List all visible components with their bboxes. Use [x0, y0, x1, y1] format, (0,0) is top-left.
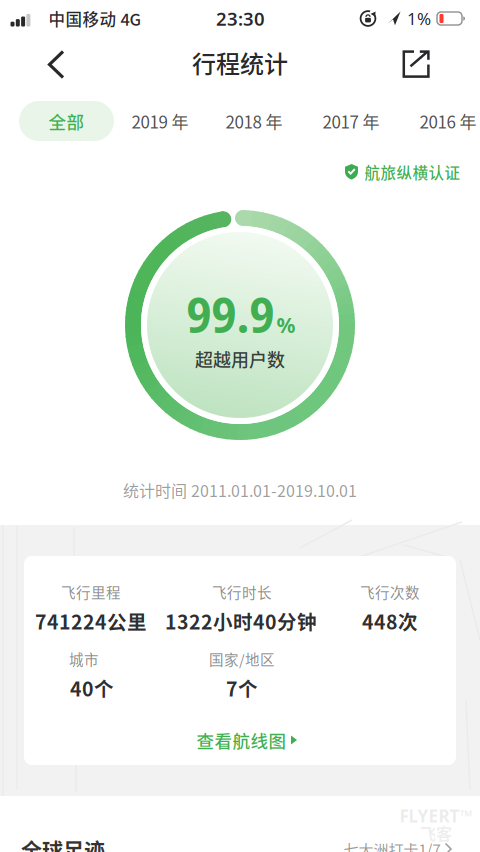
button[interactable]: 2019 年: [131, 101, 188, 141]
staticText: 2016 年: [419, 109, 476, 133]
staticText: 448次: [362, 607, 418, 635]
staticText: 741224公里: [35, 607, 147, 635]
staticText: 1%: [407, 7, 431, 30]
staticText: 航旅纵横认证: [364, 161, 460, 183]
button[interactable]: Share: [394, 41, 438, 85]
button[interactable]: 七大洲打卡1/7: [343, 838, 452, 852]
button[interactable]: Back: [34, 42, 78, 86]
staticText: 全球足迹: [21, 834, 105, 852]
button[interactable]: 全部: [19, 101, 114, 141]
staticText: 查看航线图: [196, 727, 286, 753]
staticText: 中国移动 4G: [48, 7, 141, 30]
staticText: 99.9: [186, 281, 274, 347]
staticText: 2017 年: [322, 109, 379, 133]
staticText: 40个: [70, 674, 114, 702]
staticText: 行程统计: [192, 45, 288, 80]
button[interactable]: 2018 年: [225, 101, 282, 141]
staticText: 2019 年: [131, 109, 188, 133]
staticText: FLYERT™: [399, 804, 472, 828]
staticText: 飞客: [420, 821, 452, 845]
staticText: 统计时间 2011.01.01-2019.10.01: [123, 478, 357, 502]
staticText: 飞行时长: [212, 581, 272, 602]
staticText: %: [276, 311, 295, 339]
staticText: 超越用户数: [195, 346, 285, 372]
staticText: 23:30: [216, 6, 265, 31]
staticText: 2018 年: [225, 109, 282, 133]
staticText: 全部: [48, 108, 84, 134]
staticText: 七大洲打卡1/7: [343, 838, 440, 852]
button[interactable]: 2016 年: [419, 101, 476, 141]
button[interactable]: 查看航线图: [196, 727, 297, 753]
staticText: 飞行次数: [360, 581, 420, 602]
staticText: 飞行里程: [61, 581, 121, 602]
button[interactable]: 2017 年: [322, 101, 379, 141]
staticText: 1322小时40分钟: [165, 607, 317, 635]
staticText: 城市: [69, 648, 99, 669]
staticText: 7个: [226, 674, 258, 702]
staticText: 国家/地区: [209, 648, 275, 669]
